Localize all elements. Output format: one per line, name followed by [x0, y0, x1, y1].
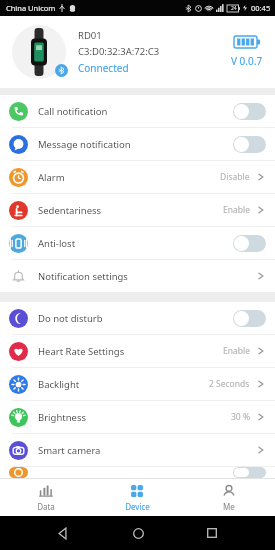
staticText: China Unicom [6, 3, 56, 13]
staticText: Do not disturb [38, 312, 103, 325]
staticText: Call notification [38, 105, 108, 118]
staticText: Device [125, 501, 150, 512]
staticText: Message notification [38, 138, 131, 151]
button[interactable]: Backlight [0, 368, 275, 400]
button[interactable]: Device [91, 478, 183, 516]
button[interactable]: Heart Rate Settings [0, 335, 275, 367]
staticText: Enable [223, 345, 250, 357]
button[interactable]: RD01 [0, 16, 275, 88]
staticText: Enable [223, 204, 250, 216]
button[interactable]: Anti-lost [0, 227, 275, 259]
button[interactable]: Toggle [233, 136, 266, 153]
staticText: Connected [78, 61, 129, 75]
staticText: Notification settings [38, 270, 128, 283]
button[interactable]: Data [0, 478, 91, 516]
button[interactable]: Toggle [233, 310, 266, 327]
button[interactable]: Call notification [0, 95, 275, 127]
staticText: Alarm [38, 171, 65, 184]
staticText: Backlight [38, 378, 80, 391]
staticText: Disable [220, 171, 250, 183]
button[interactable]: Brightness [0, 401, 275, 433]
button[interactable]: Sedentariness [0, 194, 275, 226]
staticText: 2 Seconds [209, 378, 250, 390]
button[interactable]: Toggle [233, 235, 266, 252]
staticText: Sedentariness [38, 204, 102, 217]
staticText: C3:D0:32:3A:72:C3 [78, 45, 160, 58]
staticText: 24 [231, 5, 237, 12]
staticText: 30 % [231, 411, 250, 423]
button[interactable]: Toggle [233, 103, 266, 120]
staticText: Smart camera [38, 444, 101, 457]
staticText: Brightness [38, 411, 87, 424]
staticText: 00:45 [251, 3, 271, 13]
button[interactable]: Toggle [233, 467, 266, 478]
button[interactable]: Alarm [0, 161, 275, 193]
staticText: V 0.0.7 [231, 54, 263, 68]
staticText: Me [223, 501, 235, 512]
button[interactable]: Do not disturb [0, 302, 275, 334]
staticText: RD01 [78, 29, 102, 42]
button[interactable]: Notification settings [0, 260, 275, 292]
button[interactable]: Smart camera [0, 434, 275, 466]
button[interactable]: Message notification [0, 128, 275, 160]
staticText: Heart Rate Settings [38, 345, 125, 358]
button[interactable]: Back [52, 522, 74, 544]
staticText: Anti-lost [38, 237, 76, 250]
button[interactable]: Toggle [0, 467, 275, 478]
staticText: Data [37, 501, 55, 512]
button[interactable]: Home [127, 522, 149, 544]
button[interactable]: Me [183, 478, 275, 516]
button[interactable]: Recents [201, 522, 223, 544]
